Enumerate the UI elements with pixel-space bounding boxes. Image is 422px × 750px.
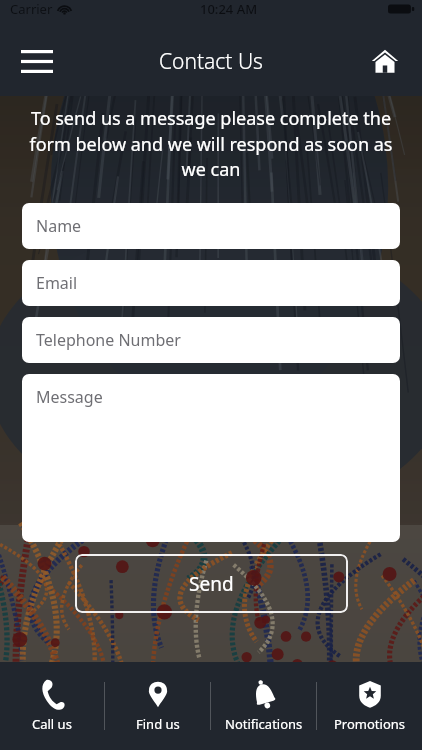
- staticText: Find us: [136, 715, 180, 733]
- button[interactable]: Promotions: [317, 671, 422, 741]
- staticText: Promotions: [334, 715, 406, 733]
- staticText: Notifications: [225, 715, 303, 733]
- button[interactable]: Menu: [14, 38, 60, 84]
- button[interactable]: Find us: [105, 671, 210, 741]
- button[interactable]: Home: [362, 38, 408, 84]
- button[interactable]: Email: [22, 260, 400, 306]
- button[interactable]: Name: [22, 203, 400, 249]
- staticText: 10:24 AM: [200, 0, 258, 18]
- staticText: Contact Us: [159, 47, 263, 76]
- button[interactable]: Send: [75, 554, 348, 613]
- staticText: Name: [36, 215, 82, 237]
- staticText: Call us: [32, 715, 72, 733]
- staticText: Telephone Number: [36, 329, 181, 351]
- button[interactable]: Call us: [0, 671, 104, 741]
- staticText: Email: [36, 272, 78, 294]
- button[interactable]: Notifications: [211, 671, 316, 741]
- button[interactable]: Message: [22, 374, 400, 542]
- button[interactable]: Telephone Number: [22, 317, 400, 363]
- staticText: Send: [189, 571, 234, 597]
- staticText: Carrier: [10, 0, 53, 18]
- staticText: To send us a message please complete the…: [16, 106, 406, 181]
- staticText: Message: [36, 386, 103, 408]
